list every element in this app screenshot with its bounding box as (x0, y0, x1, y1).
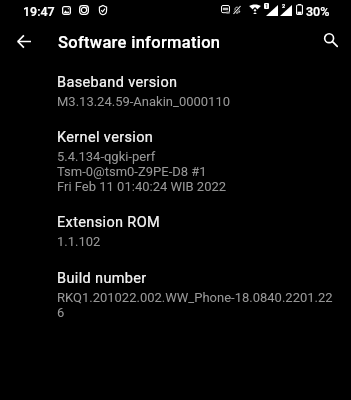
staticText: Tsm-0@tsm0-Z9PE-D8 #1 (57, 164, 207, 179)
staticText: 1 (265, 3, 269, 9)
staticText: Build number (57, 270, 147, 287)
button[interactable]: Navigate up (4, 25, 44, 57)
staticText: 19:47 (23, 4, 55, 19)
staticText: Kernel version (57, 129, 154, 146)
staticText: 30% (306, 4, 330, 19)
button[interactable]: Extension ROM (0, 214, 351, 249)
staticText: 2 (282, 3, 286, 8)
button[interactable]: Build number (0, 270, 351, 320)
staticText: Baseband version (57, 74, 178, 91)
staticText: 1.1.102 (57, 234, 101, 249)
staticText: Software information (58, 33, 221, 52)
staticText: 5.4.134-qgki-perf (57, 149, 156, 164)
button[interactable]: Kernel version (0, 129, 351, 194)
staticText: Extension ROM (57, 214, 161, 231)
button[interactable]: Baseband version (0, 74, 351, 109)
staticText: RKQ1.201022.002.WW_Phone-18.0840.2201.22… (57, 290, 339, 320)
button[interactable]: Search (312, 25, 350, 57)
staticText: M3.13.24.59-Anakin_0000110 (57, 94, 231, 109)
staticText: Fri Feb 11 01:40:24 WIB 2022 (57, 179, 227, 194)
